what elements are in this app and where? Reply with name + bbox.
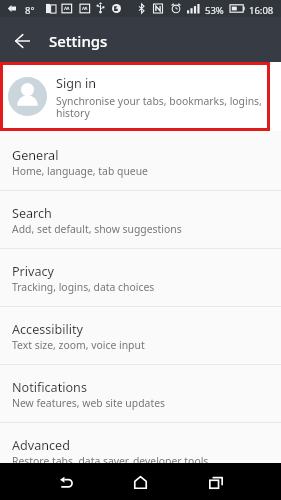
button[interactable]: Home bbox=[114, 463, 167, 500]
staticText: Settings bbox=[49, 31, 108, 51]
staticText: Advanced bbox=[12, 437, 70, 454]
staticText: 16:08 bbox=[249, 4, 274, 17]
button[interactable]: Privacy bbox=[0, 249, 281, 306]
button[interactable]: Notifications bbox=[0, 365, 281, 422]
staticText: Tracking, logins, data choices bbox=[12, 280, 155, 294]
staticText: Text size, zoom, voice input bbox=[12, 338, 145, 352]
button[interactable]: Search bbox=[0, 191, 281, 248]
staticText: 53% bbox=[205, 4, 224, 17]
staticText: Home, language, tab queue bbox=[12, 164, 148, 178]
button[interactable]: Sign in bbox=[0, 62, 281, 131]
button[interactable]: Accessibility bbox=[0, 307, 281, 364]
staticText: Accessibility bbox=[12, 321, 84, 338]
staticText: Restore tabs, data saver, developer tool… bbox=[12, 454, 209, 468]
button[interactable]: General bbox=[0, 133, 281, 190]
staticText: Sign in bbox=[56, 75, 96, 92]
staticText: Synchronise your tabs, bookmarks, logins… bbox=[56, 94, 266, 120]
staticText: 8° bbox=[25, 4, 35, 17]
button[interactable]: Recent apps bbox=[190, 463, 242, 500]
button[interactable]: Advanced bbox=[0, 423, 281, 480]
staticText: Add, set default, show suggestions bbox=[12, 222, 182, 236]
button[interactable]: Navigate up bbox=[0, 18, 44, 62]
staticText: New features, web site updates bbox=[12, 396, 165, 410]
staticText: Privacy bbox=[12, 263, 55, 280]
staticText: Notifications bbox=[12, 379, 87, 396]
staticText: General bbox=[12, 147, 59, 164]
button[interactable]: Back bbox=[40, 463, 92, 500]
staticText: Search bbox=[12, 205, 52, 222]
